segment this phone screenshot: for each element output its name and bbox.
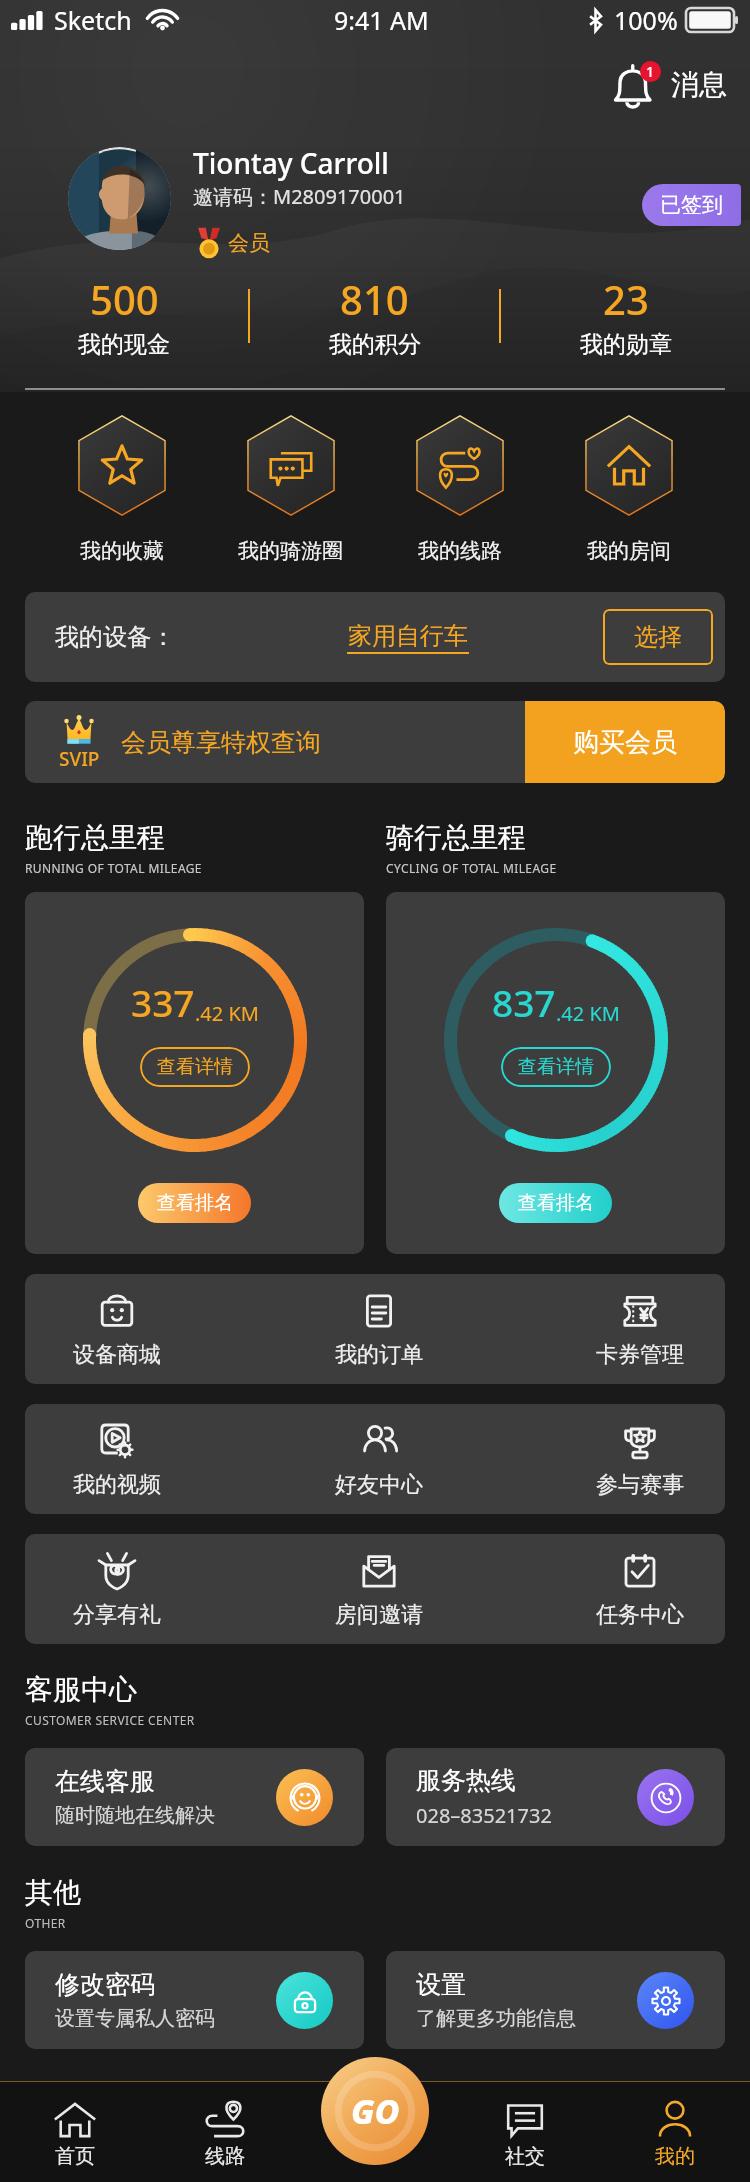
staticText: 首页 <box>55 2144 95 2169</box>
staticText: 分享有礼 <box>73 1601 161 1629</box>
staticText: .42 KM <box>195 1000 259 1027</box>
staticText: 我的线路 <box>418 538 502 564</box>
staticText: .42 KM <box>556 1000 620 1027</box>
staticText: 查看详情 <box>157 1055 233 1079</box>
staticText: 500 <box>90 272 159 326</box>
staticText: 设置 <box>416 1969 466 2000</box>
staticText: 1 <box>646 62 655 81</box>
button[interactable]: 购买会员 <box>525 701 725 783</box>
staticText: 邀请码：M2809170001 <box>193 183 406 210</box>
staticText: 837 <box>492 977 556 1027</box>
staticText: 设置专属私人密码 <box>55 2006 215 2031</box>
staticText: 我的积分 <box>329 330 421 359</box>
staticText: RUNNING OF TOTAL MILEAGE <box>25 860 202 876</box>
staticText: 参与赛事 <box>596 1471 684 1499</box>
button[interactable]: 837 <box>386 892 725 1254</box>
button[interactable]: 任务中心 <box>592 1534 688 1644</box>
button[interactable]: Avatar <box>68 147 171 250</box>
staticText: 卡券管理 <box>596 1341 684 1369</box>
staticText: Tiontay Carroll <box>193 144 389 182</box>
staticText: 随时随地在线解决 <box>55 1803 215 1828</box>
staticText: 好友中心 <box>335 1471 423 1499</box>
button[interactable]: 社交 <box>450 2101 600 2174</box>
button[interactable]: 线路 <box>150 2101 300 2174</box>
button[interactable]: 房间邀请 <box>331 1534 427 1644</box>
button[interactable]: 我的视频 <box>69 1404 165 1514</box>
staticText: 337 <box>131 977 195 1027</box>
staticText: 我的勋章 <box>580 330 672 359</box>
staticText: 客服中心 <box>25 1672 137 1707</box>
staticText: 修改密码 <box>55 1969 155 2000</box>
staticText: 已签到 <box>660 192 723 218</box>
staticText: 我的骑游圈 <box>238 538 343 564</box>
button[interactable]: 卡券管理 <box>592 1274 688 1384</box>
staticText: 家用自行车 <box>348 621 468 651</box>
staticText: 我的现金 <box>78 330 170 359</box>
staticText: Sketch <box>54 3 132 37</box>
staticText: 社交 <box>505 2144 545 2169</box>
staticText: 其他 <box>25 1875 81 1910</box>
button[interactable]: 我的设备： <box>25 592 725 682</box>
staticText: 我的房间 <box>587 538 671 564</box>
button[interactable]: 我的 <box>600 2101 750 2174</box>
staticText: 选择 <box>634 622 682 652</box>
button[interactable]: 337 <box>25 892 364 1254</box>
button[interactable]: 参与赛事 <box>592 1404 688 1514</box>
staticText: 房间邀请 <box>335 1601 423 1629</box>
button[interactable]: 在线客服 <box>25 1748 364 1846</box>
staticText: 任务中心 <box>596 1601 684 1629</box>
staticText: 810 <box>340 272 409 326</box>
staticText: 查看详情 <box>518 1055 594 1079</box>
button[interactable]: 我的收藏 <box>37 415 206 564</box>
staticText: OTHER <box>25 1915 66 1931</box>
button[interactable]: 查看详情 <box>501 1047 611 1087</box>
button[interactable]: 查看排名 <box>499 1183 612 1223</box>
staticText: 23 <box>603 272 649 326</box>
staticText: 我的视频 <box>73 1471 161 1499</box>
button[interactable]: 修改密码 <box>25 1951 364 2049</box>
staticText: SVIP <box>59 746 100 772</box>
staticText: 我的订单 <box>335 1341 423 1369</box>
staticText: 服务热线 <box>416 1765 516 1796</box>
staticText: 会员尊享特权查询 <box>121 727 321 758</box>
staticText: 线路 <box>205 2144 245 2169</box>
button[interactable]: 我的线路 <box>375 415 544 564</box>
staticText: 跑行总里程 <box>25 820 165 855</box>
button[interactable]: 1 <box>613 61 727 108</box>
button[interactable]: 23 <box>501 270 750 361</box>
staticText: 在线客服 <box>55 1766 155 1797</box>
button[interactable]: 我的订单 <box>331 1274 427 1384</box>
staticText: 设备商城 <box>73 1341 161 1369</box>
button[interactable]: 我的骑游圈 <box>206 415 375 564</box>
staticText: 我的设备： <box>55 622 175 652</box>
staticText: CYCLING OF TOTAL MILEAGE <box>386 860 557 876</box>
button[interactable]: 查看详情 <box>140 1047 250 1087</box>
button[interactable]: 分享有礼 <box>69 1534 165 1644</box>
staticText: 查看排名 <box>518 1191 594 1215</box>
staticText: 会员 <box>228 230 270 256</box>
button[interactable]: 设备商城 <box>69 1274 165 1384</box>
staticText: 购买会员 <box>573 726 677 759</box>
button[interactable]: 810 <box>250 270 499 361</box>
button[interactable]: 服务热线 <box>386 1748 725 1846</box>
button[interactable]: 查看排名 <box>138 1183 251 1223</box>
staticText: 028–83521732 <box>416 1802 552 1829</box>
button[interactable]: 选择 <box>603 609 713 665</box>
staticText: CUSTOMER SERVICE CENTER <box>25 1712 195 1728</box>
button[interactable]: 设置 <box>386 1951 725 2049</box>
button[interactable]: GO <box>321 2057 429 2165</box>
staticText: 9:41 AM <box>334 3 429 37</box>
staticText: 我的收藏 <box>80 538 164 564</box>
staticText: 我的 <box>655 2144 695 2169</box>
button[interactable]: 500 <box>0 270 248 361</box>
button[interactable]: 首页 <box>0 2101 150 2174</box>
staticText: 了解更多功能信息 <box>416 2006 576 2031</box>
staticText: GO <box>351 2088 400 2134</box>
button[interactable]: 已签到 <box>642 184 741 226</box>
button[interactable]: 好友中心 <box>331 1404 427 1514</box>
staticText: 查看排名 <box>157 1191 233 1215</box>
button[interactable]: 我的房间 <box>544 415 713 564</box>
staticText: 消息 <box>671 67 727 102</box>
staticText: 骑行总里程 <box>386 820 526 855</box>
staticText: 100% <box>614 3 678 37</box>
